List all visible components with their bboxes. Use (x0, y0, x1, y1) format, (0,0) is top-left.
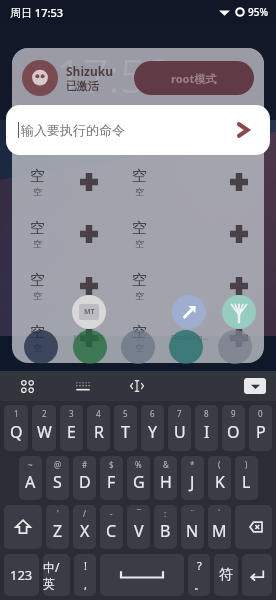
button[interactable]: 空 (114, 323, 164, 353)
staticText: 空 (132, 219, 147, 238)
button[interactable]: Dock app (24, 330, 58, 364)
button[interactable]: Backspace (235, 505, 272, 549)
button[interactable]: Add (63, 318, 114, 358)
staticText: 空 (132, 323, 147, 342)
button[interactable]: Add (214, 214, 264, 254)
button[interactable]: Add (214, 318, 264, 358)
button[interactable]: 1 (4, 405, 28, 451)
staticText: B (160, 520, 171, 542)
button[interactable]: Send (228, 115, 258, 145)
button[interactable]: Add (63, 214, 114, 254)
button[interactable]: Dock app (218, 330, 252, 364)
button[interactable]: Enter (242, 554, 272, 596)
staticText: $ (109, 459, 114, 470)
button[interactable]: Add (63, 266, 114, 306)
button[interactable]: 9 (222, 405, 245, 451)
staticText: W (37, 421, 52, 443)
button[interactable]: * (181, 456, 204, 500)
button[interactable]: % (127, 456, 150, 500)
button[interactable]: 空 (12, 219, 63, 249)
staticText: 输入要执行的命令 (21, 122, 125, 138)
staticText: A (25, 471, 36, 493)
staticText: ' (57, 508, 59, 519)
button[interactable]: ! (74, 554, 96, 596)
button[interactable]: # (73, 456, 96, 500)
staticText: 17:53 (56, 48, 173, 104)
staticText: 空 (132, 167, 147, 186)
staticText: I (204, 421, 210, 443)
button[interactable]: ¨ (181, 505, 204, 549)
button[interactable]: 输入要执行的命令 (6, 105, 270, 155)
staticText: & (163, 459, 169, 470)
button[interactable]: Add (214, 266, 264, 306)
staticText: ~ (28, 459, 33, 470)
staticText: D (79, 471, 91, 493)
button[interactable]: Dock app (73, 330, 107, 364)
button[interactable]: FontWeig... (164, 294, 214, 343)
button[interactable]: ' (46, 505, 69, 549)
staticText: ? (197, 558, 202, 573)
button[interactable]: 空 (12, 167, 63, 197)
button[interactable]: 8 (195, 405, 218, 451)
staticText: ( (218, 459, 221, 470)
button[interactable]: ~ (19, 456, 42, 500)
button[interactable]: 空 (114, 167, 164, 197)
button[interactable]: 空 (114, 219, 164, 249)
button[interactable]: 空 (12, 323, 63, 353)
staticText: 周日 17:53 (10, 5, 64, 20)
button[interactable]: : (154, 505, 177, 549)
button[interactable]: ( (208, 456, 231, 500)
button[interactable]: 3 (60, 405, 83, 451)
button[interactable]: & (154, 456, 177, 500)
button[interactable]: 4 (87, 405, 110, 451)
button[interactable]: Space (100, 554, 184, 596)
staticText: # (82, 459, 88, 470)
staticText: Magisk (227, 333, 251, 343)
button[interactable]: Shift (4, 505, 42, 549)
button[interactable]: - (100, 505, 123, 549)
staticText: M (212, 520, 227, 542)
button[interactable]: Keyboard (70, 373, 96, 399)
button[interactable]: 6 (141, 405, 164, 451)
button[interactable]: 空 (114, 271, 164, 301)
button[interactable]: Hide keyboard (244, 378, 266, 394)
staticText: Q (10, 421, 23, 443)
button[interactable]: Add (214, 162, 264, 202)
button[interactable]: Shizuku (22, 60, 58, 96)
staticText: 中/英 (43, 559, 70, 592)
button[interactable]: Move cursor (124, 373, 150, 399)
button[interactable]: Dock app (121, 330, 155, 364)
button[interactable]: ¯ (127, 505, 150, 549)
button[interactable]: 0 (249, 405, 272, 451)
button[interactable]: @ (46, 456, 69, 500)
staticText: 。 (194, 578, 205, 592)
button[interactable]: 2 (32, 405, 56, 451)
staticText: 7 (177, 408, 182, 419)
button[interactable]: 中/英 (43, 554, 70, 596)
button[interactable]: Add (63, 162, 114, 202)
button[interactable]: / (73, 505, 96, 549)
staticText: P (256, 421, 266, 443)
staticText: C (106, 520, 117, 542)
staticText: E (67, 421, 76, 443)
button[interactable]: ` (208, 505, 231, 549)
button[interactable]: 空 (12, 271, 63, 301)
button[interactable]: Dock app (169, 330, 203, 364)
button[interactable]: 7 (168, 405, 191, 451)
button[interactable]: 符 (214, 554, 238, 596)
button[interactable]: 5 (114, 405, 137, 451)
button[interactable]: ) (235, 456, 258, 500)
staticText: 6 (150, 408, 155, 419)
staticText: 已激活 (66, 79, 99, 93)
staticText: Z (53, 520, 63, 542)
button[interactable]: Magisk (214, 294, 264, 343)
button[interactable]: 123 (4, 554, 39, 596)
button[interactable]: MT (63, 294, 114, 343)
button[interactable]: Clipboard (14, 373, 40, 399)
button[interactable]: root模式 (134, 61, 254, 95)
button[interactable]: ? (188, 554, 210, 596)
staticText: 4 (96, 408, 101, 419)
staticText: 空 (30, 167, 45, 186)
button[interactable]: $ (100, 456, 123, 500)
staticText: L (242, 471, 251, 493)
